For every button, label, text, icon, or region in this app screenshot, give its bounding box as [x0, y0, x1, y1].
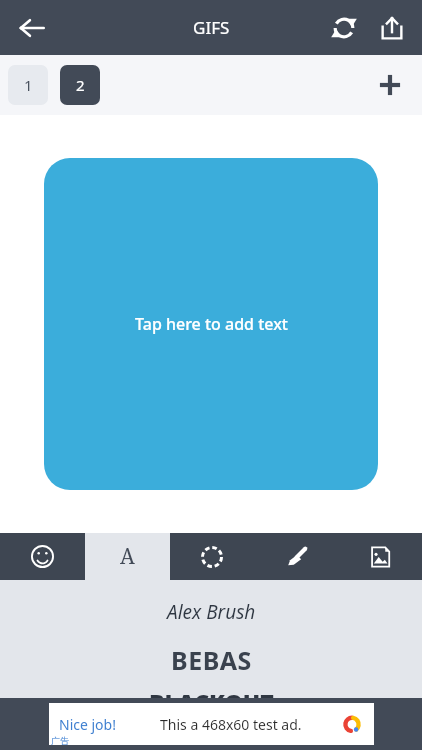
staticText: A [120, 542, 135, 571]
button[interactable]: Draw [254, 533, 338, 580]
staticText: Alex Brush [167, 599, 256, 625]
staticText: Tap here to add text [135, 313, 288, 335]
button[interactable]: BLACKOUT [0, 686, 422, 726]
staticText: Nice job! [59, 715, 116, 734]
button[interactable]: Back [8, 4, 56, 52]
button[interactable]: Stickers [0, 533, 85, 580]
staticText: 广告 [51, 735, 69, 746]
button[interactable]: Shapes [170, 533, 254, 580]
button[interactable]: Refresh [320, 4, 368, 52]
button[interactable]: Text [85, 533, 170, 580]
staticText: 2 [76, 75, 85, 95]
staticText: BLACKOUT [149, 686, 274, 717]
staticText: 1 [24, 75, 33, 95]
button[interactable]: BEBAS [0, 634, 422, 686]
button[interactable]: Alex Brush [0, 590, 422, 634]
button[interactable]: Share [368, 4, 416, 52]
button[interactable]: 1 [8, 65, 48, 105]
button[interactable]: Add page [366, 61, 414, 109]
button[interactable]: 2 [60, 65, 100, 105]
staticText: This a 468x60 test ad. [160, 715, 302, 734]
button[interactable]: Nice job! [49, 703, 374, 745]
staticText: GIFS [193, 16, 230, 39]
button[interactable]: Tap here to add text [44, 158, 378, 490]
button[interactable]: Image [338, 533, 422, 580]
staticText: BEBAS [171, 643, 252, 677]
